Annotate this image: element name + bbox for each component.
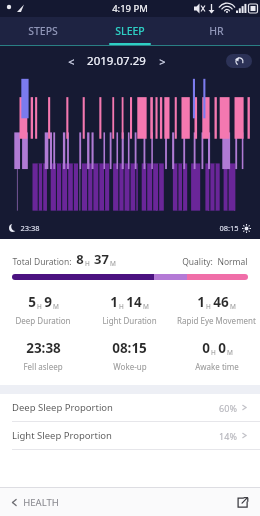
button[interactable]: HR bbox=[173, 17, 260, 45]
staticText: STEPS bbox=[28, 24, 58, 38]
button[interactable]: Next day bbox=[152, 51, 172, 71]
staticText: M bbox=[227, 348, 233, 357]
staticText: M bbox=[230, 302, 236, 311]
button[interactable]: Deep Sleep Proportion bbox=[0, 394, 260, 421]
staticText: < bbox=[68, 54, 75, 69]
button[interactable]: Refresh bbox=[226, 54, 252, 68]
staticText: M bbox=[53, 302, 59, 311]
staticText: Light Sleep Proportion bbox=[12, 429, 112, 442]
staticText: Awake time bbox=[195, 361, 239, 372]
staticText: > bbox=[159, 54, 166, 69]
staticText: Light Duration bbox=[102, 315, 157, 326]
staticText: H bbox=[119, 302, 124, 311]
staticText: 4:19 PM bbox=[112, 2, 148, 15]
staticText: 37 bbox=[94, 250, 109, 268]
button[interactable]: Light Sleep Proportion bbox=[0, 422, 260, 449]
button[interactable]: SLEEP bbox=[86, 17, 173, 45]
staticText: Fell asleep bbox=[23, 361, 63, 372]
staticText: M bbox=[143, 302, 149, 311]
staticText: SLEEP bbox=[115, 24, 145, 38]
staticText: 1 bbox=[197, 293, 205, 311]
staticText: 0 bbox=[202, 339, 210, 357]
staticText: H bbox=[211, 348, 216, 357]
staticText: Rapid Eye Movement bbox=[177, 315, 256, 326]
button[interactable]: Previous day bbox=[61, 51, 81, 71]
staticText: 14% bbox=[219, 430, 237, 442]
staticText: 5 bbox=[28, 293, 36, 311]
staticText: Normal bbox=[217, 256, 248, 268]
button[interactable]: Share bbox=[232, 492, 252, 512]
staticText: Deep Duration bbox=[15, 315, 71, 326]
button[interactable]: STEPS bbox=[0, 17, 86, 45]
staticText: H bbox=[37, 302, 42, 311]
staticText: 46 bbox=[213, 293, 229, 311]
staticText: H bbox=[85, 259, 90, 268]
staticText: Total Duration: bbox=[12, 256, 72, 268]
staticText: Woke-up bbox=[113, 361, 147, 372]
staticText: M bbox=[110, 259, 116, 268]
staticText: 60% bbox=[219, 402, 237, 414]
staticText: 23:38 bbox=[20, 223, 40, 233]
staticText: 2019.07.29 bbox=[87, 53, 146, 69]
staticText: 9 bbox=[44, 293, 52, 311]
staticText: HEALTH bbox=[23, 496, 59, 509]
staticText: H bbox=[206, 302, 211, 311]
staticText: 08:15 bbox=[112, 339, 147, 357]
staticText: Deep Sleep Proportion bbox=[12, 401, 113, 414]
staticText: HR bbox=[209, 24, 224, 38]
staticText: 0 bbox=[218, 339, 226, 357]
staticText: 8 bbox=[76, 250, 84, 268]
staticText: Quality: bbox=[182, 256, 213, 268]
staticText: 08:15 bbox=[219, 223, 239, 233]
button[interactable]: HEALTH bbox=[8, 492, 61, 513]
staticText: 1 bbox=[110, 293, 118, 311]
staticText: 23:38 bbox=[26, 339, 61, 357]
staticText: 14 bbox=[126, 293, 142, 311]
